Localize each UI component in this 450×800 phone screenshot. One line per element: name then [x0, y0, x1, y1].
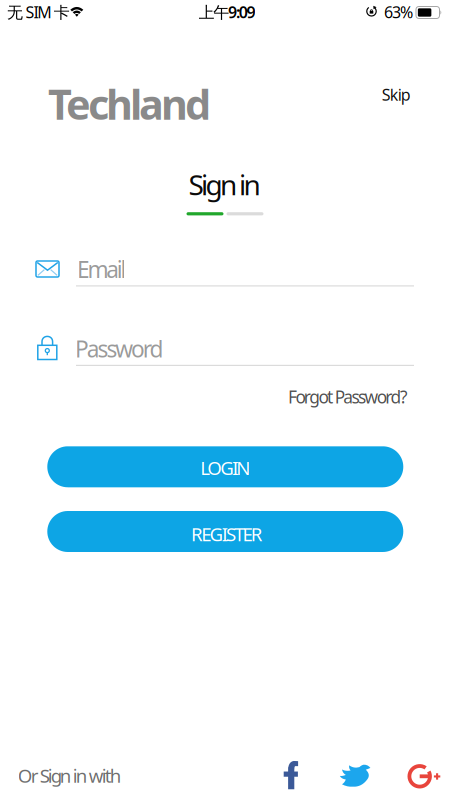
staticText: LOGIN	[200, 455, 250, 480]
staticText: REGISTER	[191, 522, 263, 546]
button[interactable]: Sign in with Google	[401, 757, 446, 795]
button[interactable]: LOGIN	[47, 446, 403, 487]
staticText: Techland	[48, 76, 211, 131]
staticText: 无 SIM 卡	[7, 1, 70, 23]
staticText: Or Sign in with	[18, 763, 122, 788]
button[interactable]: Forgot Password?	[248, 379, 408, 414]
button[interactable]: Sign in with Twitter	[334, 758, 377, 793]
staticText: Password	[75, 334, 164, 364]
button[interactable]: REGISTER	[47, 511, 403, 552]
staticText: 上午9:09	[198, 1, 255, 23]
staticText: Skip	[382, 84, 411, 105]
button[interactable]: Skip	[374, 76, 419, 113]
staticText: Email	[77, 254, 126, 284]
staticText: Sign in	[188, 166, 260, 203]
staticText: 63%	[384, 1, 413, 23]
button[interactable]: Sign in with Facebook	[276, 755, 304, 795]
staticText: Forgot Password?	[288, 385, 408, 408]
